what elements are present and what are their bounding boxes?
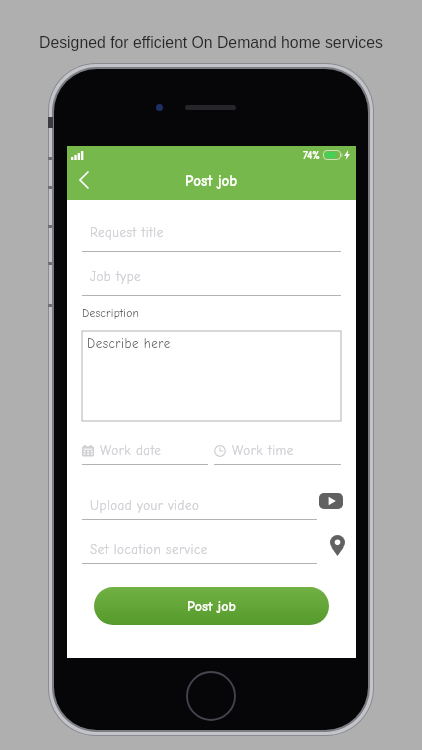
staticText: Designed for efficient On Demand home se…	[39, 34, 383, 52]
button[interactable]: Describe here	[82, 331, 341, 421]
staticText: Work time	[232, 443, 294, 458]
staticText: Post job	[185, 172, 238, 189]
staticText: Post job	[187, 598, 236, 614]
staticText: Describe here	[87, 336, 171, 351]
staticText: Request title	[90, 225, 164, 240]
button[interactable]: Back	[67, 163, 99, 197]
staticText: Upload your video	[90, 498, 200, 513]
button[interactable]: Upload your video	[82, 502, 341, 517]
staticText: 74%	[303, 149, 320, 162]
button[interactable]: Job type	[82, 273, 341, 296]
staticText: Work date	[100, 443, 162, 458]
button[interactable]: Request title	[82, 229, 341, 252]
button[interactable]: Set location service	[82, 546, 341, 561]
button[interactable]: Post job	[94, 587, 329, 625]
staticText: Set location service	[90, 542, 208, 557]
button[interactable]: Work date	[82, 443, 208, 465]
staticText: Description	[82, 307, 140, 320]
button[interactable]: Set location	[324, 533, 350, 558]
button[interactable]: Work time	[214, 443, 341, 465]
button[interactable]: Upload video	[318, 488, 344, 513]
staticText: Job type	[90, 269, 142, 284]
